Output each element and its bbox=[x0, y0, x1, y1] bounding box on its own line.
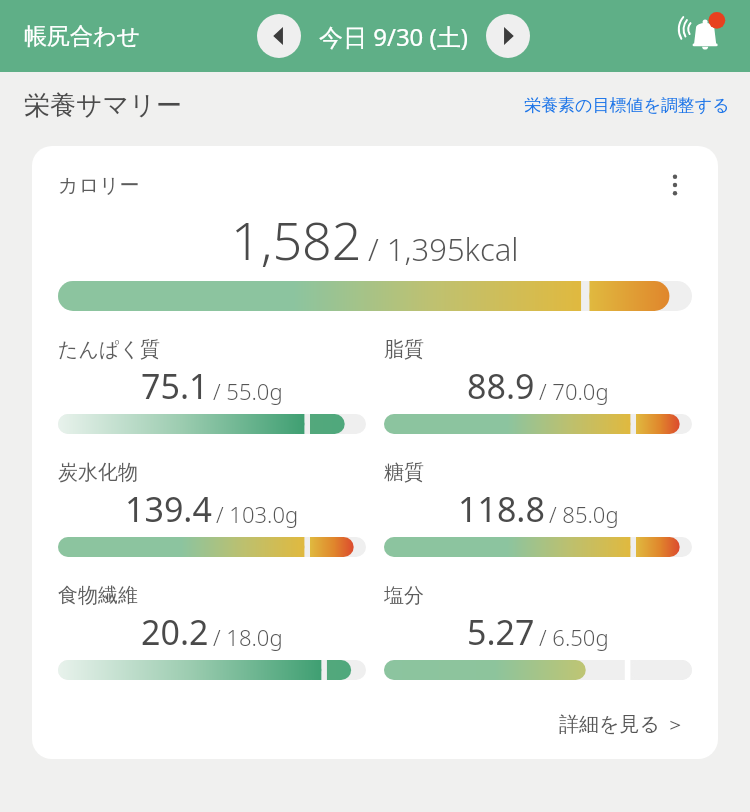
staticText: 糖質 bbox=[384, 460, 424, 485]
button[interactable]: 脂質 bbox=[384, 337, 692, 434]
staticText: / 85.0g bbox=[549, 499, 619, 529]
staticText: たんぱく質 bbox=[58, 337, 160, 362]
staticText: 139.4 bbox=[125, 486, 212, 532]
staticText: 帳尻合わせ bbox=[24, 22, 141, 51]
staticText: 1,582 bbox=[231, 204, 362, 275]
staticText: / 70.0g bbox=[539, 376, 609, 406]
button[interactable]: Previous day bbox=[257, 14, 301, 58]
staticText: 食物繊維 bbox=[58, 583, 138, 608]
button[interactable]: 炭水化物 bbox=[58, 460, 366, 557]
button[interactable]: More options bbox=[658, 168, 692, 202]
staticText: 88.9 bbox=[467, 363, 535, 409]
staticText: 今日 9/30 (土) bbox=[319, 20, 468, 53]
staticText: / 103.0g bbox=[216, 499, 299, 529]
staticText: 脂質 bbox=[384, 337, 424, 362]
staticText: 20.2 bbox=[141, 609, 209, 655]
button[interactable]: 栄養素の目標値を調整する bbox=[518, 89, 736, 122]
staticText: 塩分 bbox=[384, 583, 424, 608]
button[interactable]: 詳細を見る ＞ bbox=[553, 702, 692, 745]
button[interactable]: 塩分 bbox=[384, 583, 692, 680]
staticText: 栄養素の目標値を調整する bbox=[524, 95, 730, 116]
staticText: 118.8 bbox=[458, 486, 545, 532]
staticText: 栄養サマリー bbox=[24, 89, 182, 122]
button[interactable]: 食物繊維 bbox=[58, 583, 366, 680]
button[interactable]: たんぱく質 bbox=[58, 337, 366, 434]
button[interactable]: 糖質 bbox=[384, 460, 692, 557]
staticText: カロリー bbox=[58, 173, 140, 198]
staticText: / 18.0g bbox=[213, 622, 283, 652]
staticText: / 1,395kcal bbox=[368, 228, 519, 270]
staticText: / 6.50g bbox=[539, 622, 609, 652]
staticText: 詳細を見る ＞ bbox=[559, 710, 686, 737]
staticText: 5.27 bbox=[467, 609, 535, 655]
staticText: / 55.0g bbox=[213, 376, 283, 406]
staticText: 炭水化物 bbox=[58, 460, 138, 485]
button[interactable]: Next day bbox=[486, 14, 530, 58]
button[interactable]: Notifications bbox=[676, 8, 732, 64]
staticText: 75.1 bbox=[141, 363, 209, 409]
